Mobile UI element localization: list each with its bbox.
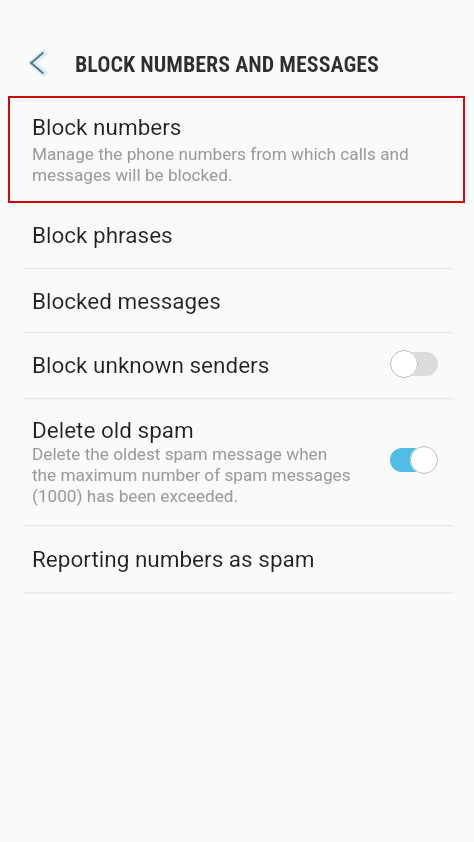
button[interactable]: Switch, on	[390, 446, 438, 474]
staticText: Reporting numbers as spam	[32, 546, 315, 572]
staticText: Blocked messages	[32, 288, 221, 314]
staticText: Block numbers	[32, 114, 182, 140]
staticText: Manage the phone numbers from which call…	[32, 144, 422, 186]
button[interactable]: Delete old spam	[0, 398, 474, 526]
button[interactable]: Switch, off	[390, 350, 438, 378]
staticText: BLOCK NUMBERS AND MESSAGES	[75, 52, 379, 78]
staticText: Delete old spam	[32, 417, 194, 443]
button[interactable]: Reporting numbers as spam	[0, 525, 474, 592]
button[interactable]: Block numbers	[8, 96, 465, 203]
button[interactable]: Block phrases	[0, 202, 474, 268]
button[interactable]: Blocked messages	[0, 268, 474, 333]
staticText: Block unknown senders	[32, 352, 270, 378]
staticText: Block phrases	[32, 222, 173, 248]
button[interactable]: Block unknown senders	[0, 332, 474, 398]
button[interactable]: Navigate up	[14, 41, 58, 85]
staticText: Delete the oldest spam message when the …	[32, 444, 353, 507]
